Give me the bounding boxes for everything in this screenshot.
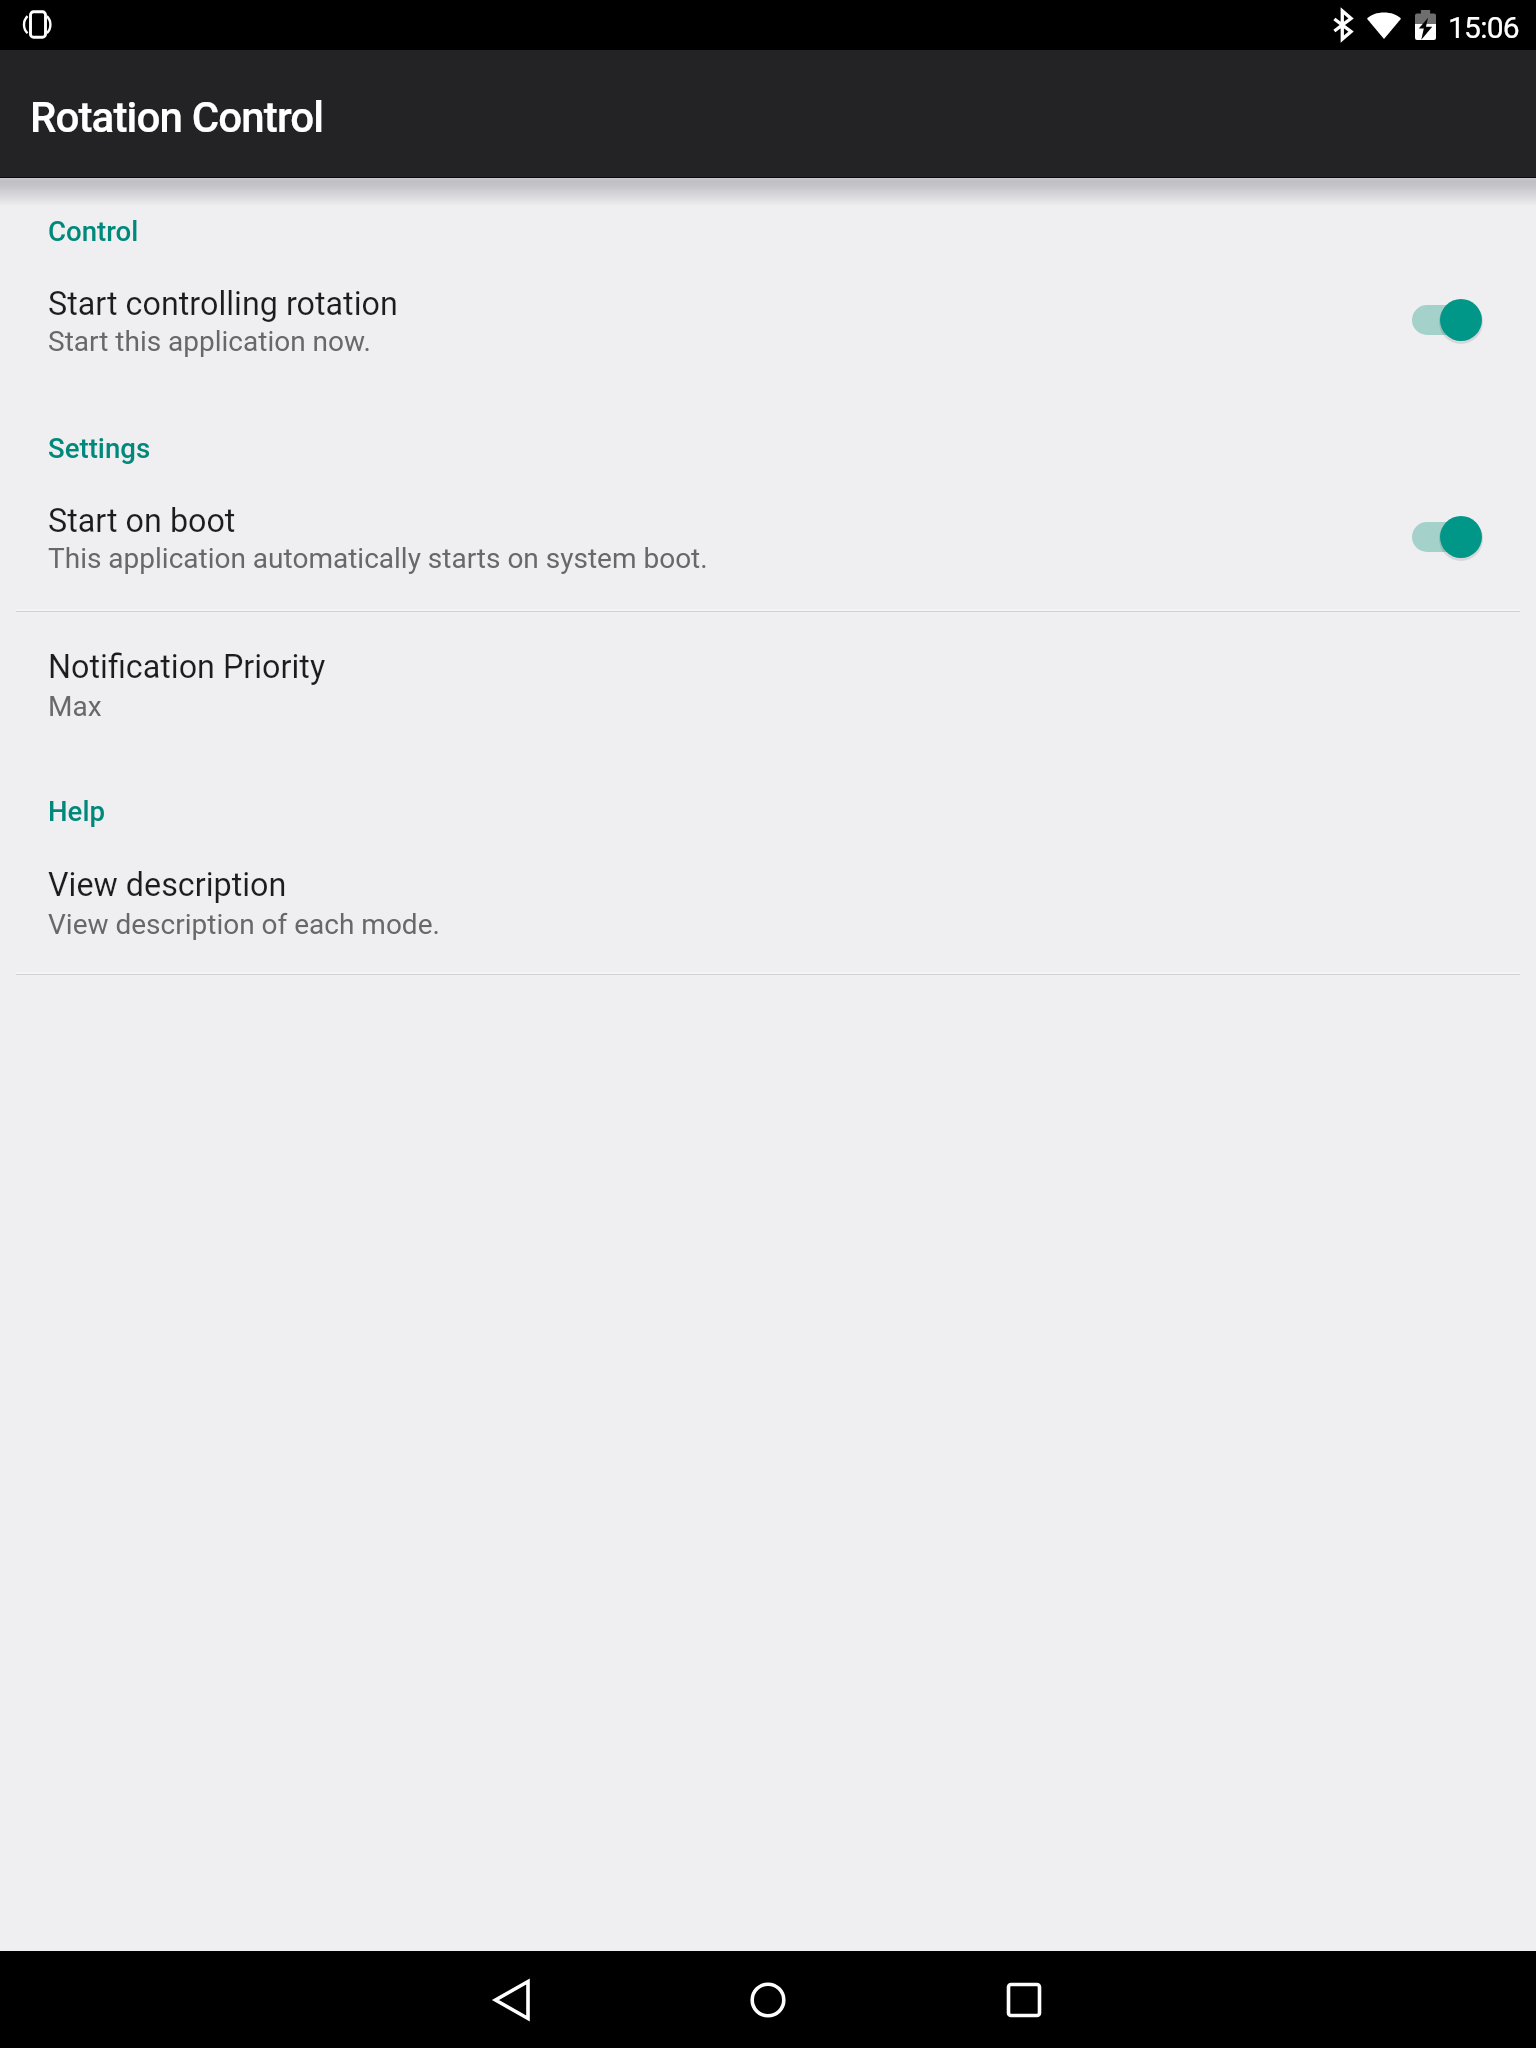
button[interactable]: Notification Priority: [0, 633, 1536, 732]
button[interactable]: Start controlling rotation: [0, 270, 1536, 367]
button[interactable]: Back: [456, 1951, 568, 2048]
button[interactable]: Toggle: [1396, 497, 1500, 577]
staticText: Help: [48, 795, 106, 827]
staticText: Start this application now.: [48, 325, 371, 358]
staticText: Notification Priority: [48, 648, 326, 686]
button[interactable]: Recent apps: [968, 1951, 1080, 2048]
staticText: Control: [48, 215, 139, 247]
button[interactable]: View description: [0, 851, 1536, 950]
staticText: Start controlling rotation: [48, 285, 398, 323]
staticText: Rotation Control: [30, 93, 324, 142]
button[interactable]: Toggle: [1396, 280, 1500, 360]
button[interactable]: Start on boot: [0, 487, 1536, 584]
staticText: 15:06: [1448, 10, 1519, 45]
staticText: This application automatically starts on…: [48, 542, 708, 575]
staticText: Max: [48, 690, 102, 723]
staticText: Settings: [48, 432, 151, 464]
button[interactable]: Home: [712, 1951, 824, 2048]
staticText: View description of each mode.: [48, 908, 440, 941]
staticText: Start on boot: [48, 502, 236, 540]
staticText: View description: [48, 866, 287, 904]
